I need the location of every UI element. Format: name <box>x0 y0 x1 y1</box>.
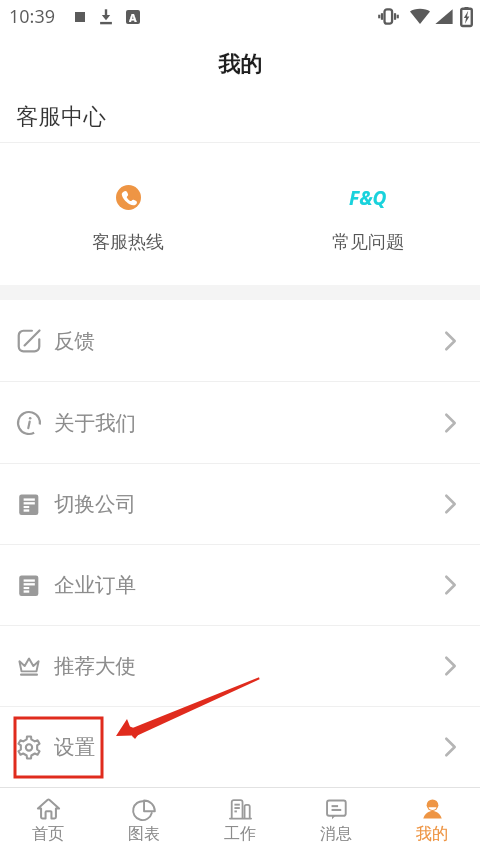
button[interactable]: 工作 <box>192 787 288 852</box>
staticText: 工作 <box>224 824 256 844</box>
staticText: F&Q <box>349 185 387 210</box>
button[interactable]: 消息 <box>288 787 384 852</box>
staticText: 10:39 <box>9 4 56 29</box>
button[interactable]: 企业订单 <box>0 545 480 625</box>
staticText: A <box>129 10 137 24</box>
staticText: 关于我们 <box>54 410 136 436</box>
button[interactable]: 首页 <box>0 787 96 852</box>
staticText: 推荐大使 <box>54 653 136 679</box>
staticText: 切换公司 <box>54 491 136 517</box>
button[interactable]: 切换公司 <box>0 464 480 544</box>
staticText: 消息 <box>320 824 352 844</box>
staticText: 图表 <box>128 824 160 844</box>
staticText: 客服中心 <box>16 102 106 130</box>
button[interactable]: 设置 <box>0 707 480 787</box>
staticText: 首页 <box>32 824 64 844</box>
button[interactable]: 图表 <box>96 787 192 852</box>
staticText: 常见问题 <box>332 231 404 254</box>
staticText: 企业订单 <box>54 572 136 598</box>
button[interactable]: 关于我们 <box>0 382 480 463</box>
button[interactable]: 客服热线 <box>8 146 248 288</box>
staticText: 客服热线 <box>92 231 164 254</box>
staticText: 我的 <box>218 51 262 79</box>
button[interactable]: 推荐大使 <box>0 626 480 706</box>
staticText: 我的 <box>416 824 448 844</box>
button[interactable]: 反馈 <box>0 300 480 381</box>
staticText: 设置 <box>54 734 95 760</box>
staticText: 反馈 <box>54 328 95 354</box>
button[interactable]: F&Q <box>248 146 480 288</box>
button[interactable]: 我的 <box>384 787 480 852</box>
